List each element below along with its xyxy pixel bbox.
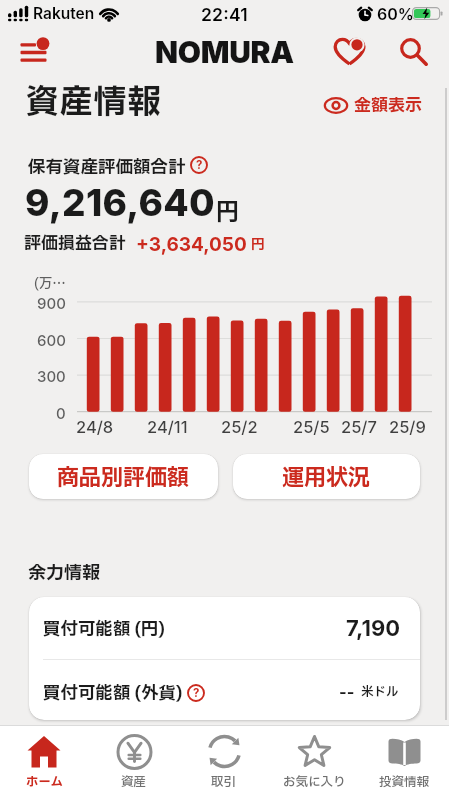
button[interactable]: 投資情報 <box>359 726 449 798</box>
button[interactable] <box>12 29 56 69</box>
staticText: -- <box>339 682 355 702</box>
staticText: 米ドル <box>361 683 399 702</box>
staticText: Rakuten <box>33 4 95 23</box>
staticText: 7,190 <box>346 615 401 642</box>
staticText: 余力情報 <box>28 560 100 587</box>
button[interactable]: 買付可能額 (円) <box>43 597 401 660</box>
button[interactable]: 運用状況 <box>233 454 420 499</box>
staticText: 300 <box>37 367 66 385</box>
button[interactable] <box>327 32 371 72</box>
staticText: 円 <box>251 235 265 255</box>
staticText: 取引 <box>211 773 237 792</box>
staticText: 25/2 <box>221 417 258 437</box>
staticText: ? <box>193 686 200 700</box>
staticText: 買付可能額 (円) <box>43 616 165 642</box>
staticText: 9,216,640 <box>25 180 215 225</box>
staticText: 60% <box>377 4 414 23</box>
staticText: 900 <box>37 294 66 312</box>
staticText: 金額表示 <box>354 93 422 118</box>
staticText: 資産 <box>121 773 147 792</box>
staticText: ホーム <box>26 773 64 792</box>
staticText: 評価損益合計 <box>24 231 126 256</box>
button[interactable]: 取引 <box>179 726 269 798</box>
staticText: 24/11 <box>147 417 188 437</box>
button[interactable]: 買付可能額 (外貨) <box>43 665 399 720</box>
staticText: 商品別評価額 <box>57 462 190 495</box>
button[interactable]: 商品別評価額 <box>29 454 218 499</box>
staticText: +3,634,050 <box>136 233 247 256</box>
staticText: (万… <box>34 274 66 294</box>
staticText: 25/5 <box>293 417 330 437</box>
staticText: 24/8 <box>76 417 114 437</box>
staticText: 600 <box>37 331 66 349</box>
button[interactable]: ホーム <box>0 726 89 798</box>
button[interactable]: 金額表示 <box>324 93 422 118</box>
staticText: 22:41 <box>201 4 248 25</box>
staticText: NOMURA <box>155 34 294 70</box>
staticText: 0 <box>56 404 66 422</box>
staticText: 資産情報 <box>26 78 162 127</box>
staticText: 投資情報 <box>379 773 430 792</box>
staticText: 買付可能額 (外貨) <box>43 680 183 706</box>
staticText: 25/7 <box>341 417 377 437</box>
staticText: 運用状況 <box>282 462 371 495</box>
button[interactable]: お気に入り <box>269 726 359 798</box>
staticText: ? <box>196 158 203 172</box>
button[interactable]: 資産 <box>89 726 179 798</box>
staticText: お気に入り <box>283 773 346 792</box>
staticText: 保有資産評価額合計 <box>28 154 186 180</box>
staticText: 25/9 <box>389 417 426 437</box>
staticText: 円 <box>216 196 239 230</box>
button[interactable] <box>392 32 436 72</box>
